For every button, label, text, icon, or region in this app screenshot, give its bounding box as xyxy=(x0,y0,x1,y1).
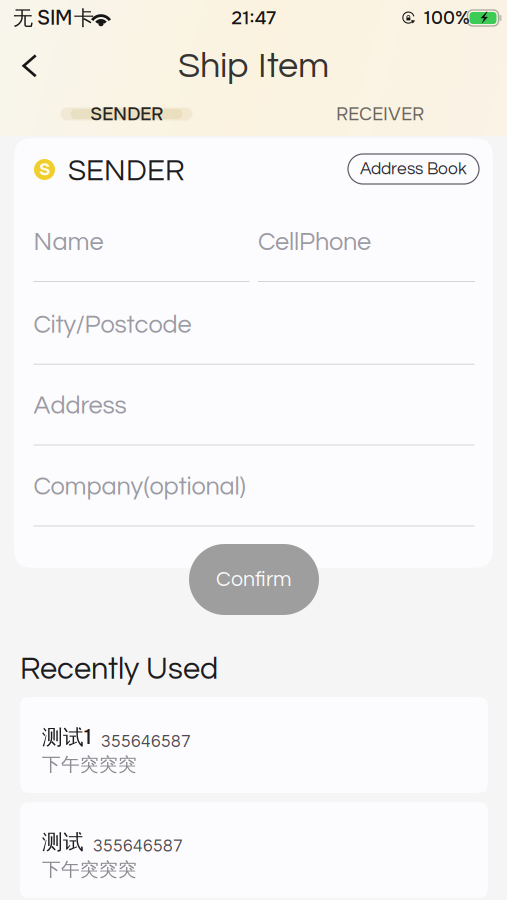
staticText: 下午突突突 xyxy=(42,753,137,776)
staticText: S xyxy=(39,158,50,181)
button[interactable]: 测试 xyxy=(20,802,488,898)
staticText: Address xyxy=(33,393,126,418)
staticText: 测试1 xyxy=(42,724,92,750)
button[interactable]: Back xyxy=(8,48,52,84)
staticText: Recently Used xyxy=(20,654,218,685)
staticText: RECEIVER xyxy=(336,102,424,126)
staticText: Name xyxy=(33,229,103,255)
staticText: CellPhone xyxy=(258,229,371,255)
button[interactable]: 测试1 xyxy=(20,697,488,793)
button[interactable]: SENDER xyxy=(0,103,253,125)
staticText: Address Book xyxy=(360,160,467,178)
staticText: 355646587 xyxy=(93,838,183,855)
staticText: 下午突突突 xyxy=(42,858,137,881)
staticText: 21:47 xyxy=(231,6,275,30)
staticText: City/Postcode xyxy=(33,312,191,338)
staticText: 100% xyxy=(424,6,470,29)
staticText: Confirm xyxy=(216,569,292,590)
button[interactable]: RECEIVER xyxy=(253,103,507,125)
staticText: 无 SIM 卡 xyxy=(13,5,94,31)
staticText: Company(optional) xyxy=(33,474,245,499)
staticText: 355646587 xyxy=(101,733,191,750)
staticText: SENDER xyxy=(68,156,185,186)
button[interactable]: Address Book xyxy=(348,154,479,184)
button[interactable]: Confirm xyxy=(189,544,319,615)
staticText: 测试 xyxy=(42,829,84,855)
staticText: SENDER xyxy=(90,102,163,126)
staticText: Ship Item xyxy=(178,48,329,84)
